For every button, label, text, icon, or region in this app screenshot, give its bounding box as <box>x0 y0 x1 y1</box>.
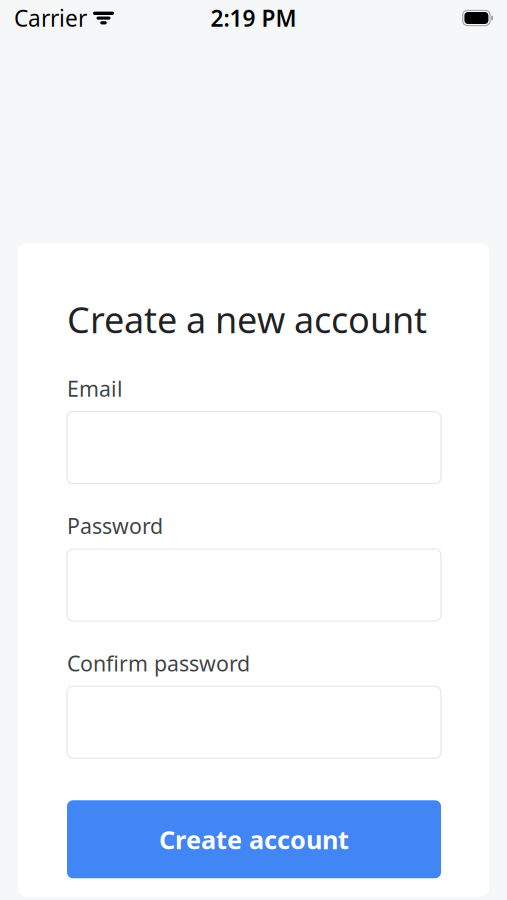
button[interactable]: Email <box>67 412 441 484</box>
staticText: Create account <box>159 822 349 856</box>
staticText: 2:19 PM <box>210 3 296 33</box>
button[interactable]: Create account <box>67 800 441 878</box>
staticText: Create a new account <box>67 295 427 343</box>
staticText: Password <box>67 512 163 540</box>
staticText: Carrier <box>14 3 87 33</box>
button[interactable]: Confirm password <box>67 686 441 758</box>
staticText: Email <box>67 374 123 403</box>
staticText: Confirm password <box>67 649 250 677</box>
